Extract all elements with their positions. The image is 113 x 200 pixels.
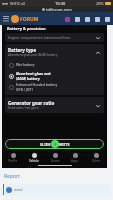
staticText: WiFiCall [10, 1, 25, 6]
button[interactable]: Other [86, 151, 106, 164]
button[interactable]: Profile [3, 151, 23, 164]
staticText: Other [92, 159, 101, 163]
staticText: » [54, 141, 57, 148]
staticText: Apps [71, 159, 79, 163]
button[interactable]: Home [45, 151, 65, 164]
button[interactable]: Absorbent glass mat (AGM) battery [8, 70, 101, 81]
button[interactable]: Expand [94, 34, 101, 41]
staticText: Absorbent glass mat (AGM) battery [8, 53, 58, 57]
staticText: FORUM [20, 16, 39, 23]
staticText: Report [4, 173, 20, 180]
button[interactable]: FORUM [11, 15, 39, 23]
staticText: word [14, 187, 23, 192]
button[interactable]: Search [102, 14, 112, 24]
button[interactable]: Alerts [82, 14, 92, 24]
button[interactable]: Wet battery [8, 59, 101, 70]
staticText: Battery & provision [7, 26, 46, 31]
staticText: Fixed ratio / not given [8, 106, 39, 110]
staticText: Wet battery [16, 62, 35, 67]
button[interactable]: Generator gear ratio [5, 97, 104, 113]
staticText: Home [51, 159, 60, 163]
staticText: 19:30 [55, 1, 66, 6]
button[interactable]: Expand [94, 102, 101, 109]
button[interactable]: Engine compartment transverse/front [5, 33, 104, 42]
button[interactable]: Vehicle [24, 151, 44, 164]
button[interactable]: Enhanced flooded battery (EFB / JIST) [8, 81, 101, 92]
button[interactable]: SLIDE TO WRITE [5, 139, 104, 149]
staticText: Absorbent glass mat (AGM) battery [16, 71, 51, 81]
staticText: Vehicle [29, 159, 39, 163]
button[interactable]: Apps [65, 151, 85, 164]
staticText: Profile [8, 159, 18, 163]
staticText: Battery type [8, 47, 37, 53]
staticText: 28% [96, 1, 104, 6]
button[interactable]: Expand [94, 49, 101, 56]
button[interactable]: Menu [0, 13, 11, 24]
staticText: Generator gear ratio [8, 100, 55, 106]
staticText: Engine compartment transverse/front [8, 35, 71, 40]
button[interactable]: Location [92, 14, 102, 24]
staticText: ▰▰ [2, 1, 9, 6]
staticText: Enhanced flooded battery (EFB / JIST) [16, 82, 58, 92]
button[interactable]: Messages [72, 14, 82, 24]
staticText: tdiforum.com [46, 7, 72, 12]
button[interactable]: Account [62, 14, 72, 24]
staticText: SLIDE TO WRITE [40, 142, 70, 147]
